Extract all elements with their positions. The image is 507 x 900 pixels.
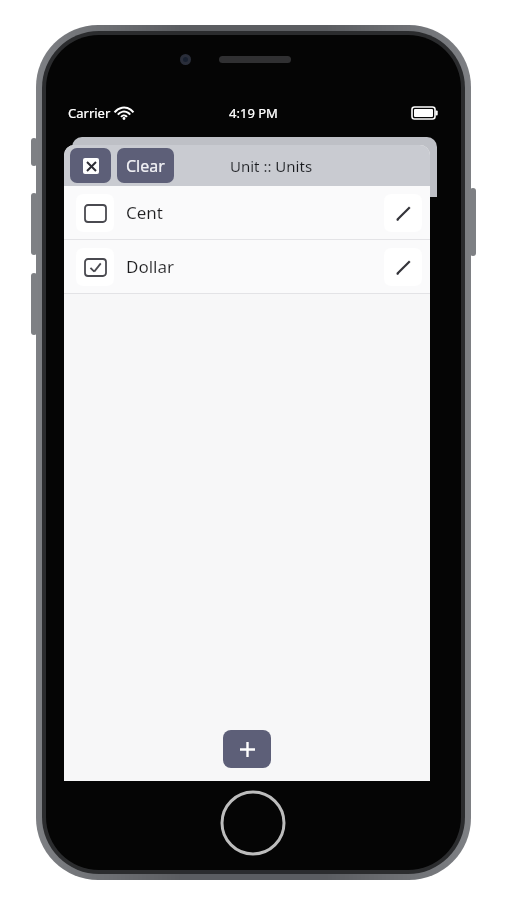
staticText: Unit :: Units [230,156,313,176]
staticText: Clear [126,155,165,177]
button[interactable]: Unchecked [64,186,430,239]
button[interactable]: Checked [64,240,430,293]
staticText: Cent [126,201,163,224]
button[interactable]: Edit [384,248,422,286]
button[interactable]: Close [70,148,111,183]
button[interactable]: Clear [117,148,174,183]
staticText: Carrier [68,104,111,122]
button[interactable]: Unchecked [76,194,114,232]
staticText: Dollar [126,255,175,278]
button[interactable]: Add [223,730,271,768]
button[interactable]: Checked [76,248,114,286]
button[interactable]: Edit [384,194,422,232]
staticText: 4:19 PM [229,104,278,122]
